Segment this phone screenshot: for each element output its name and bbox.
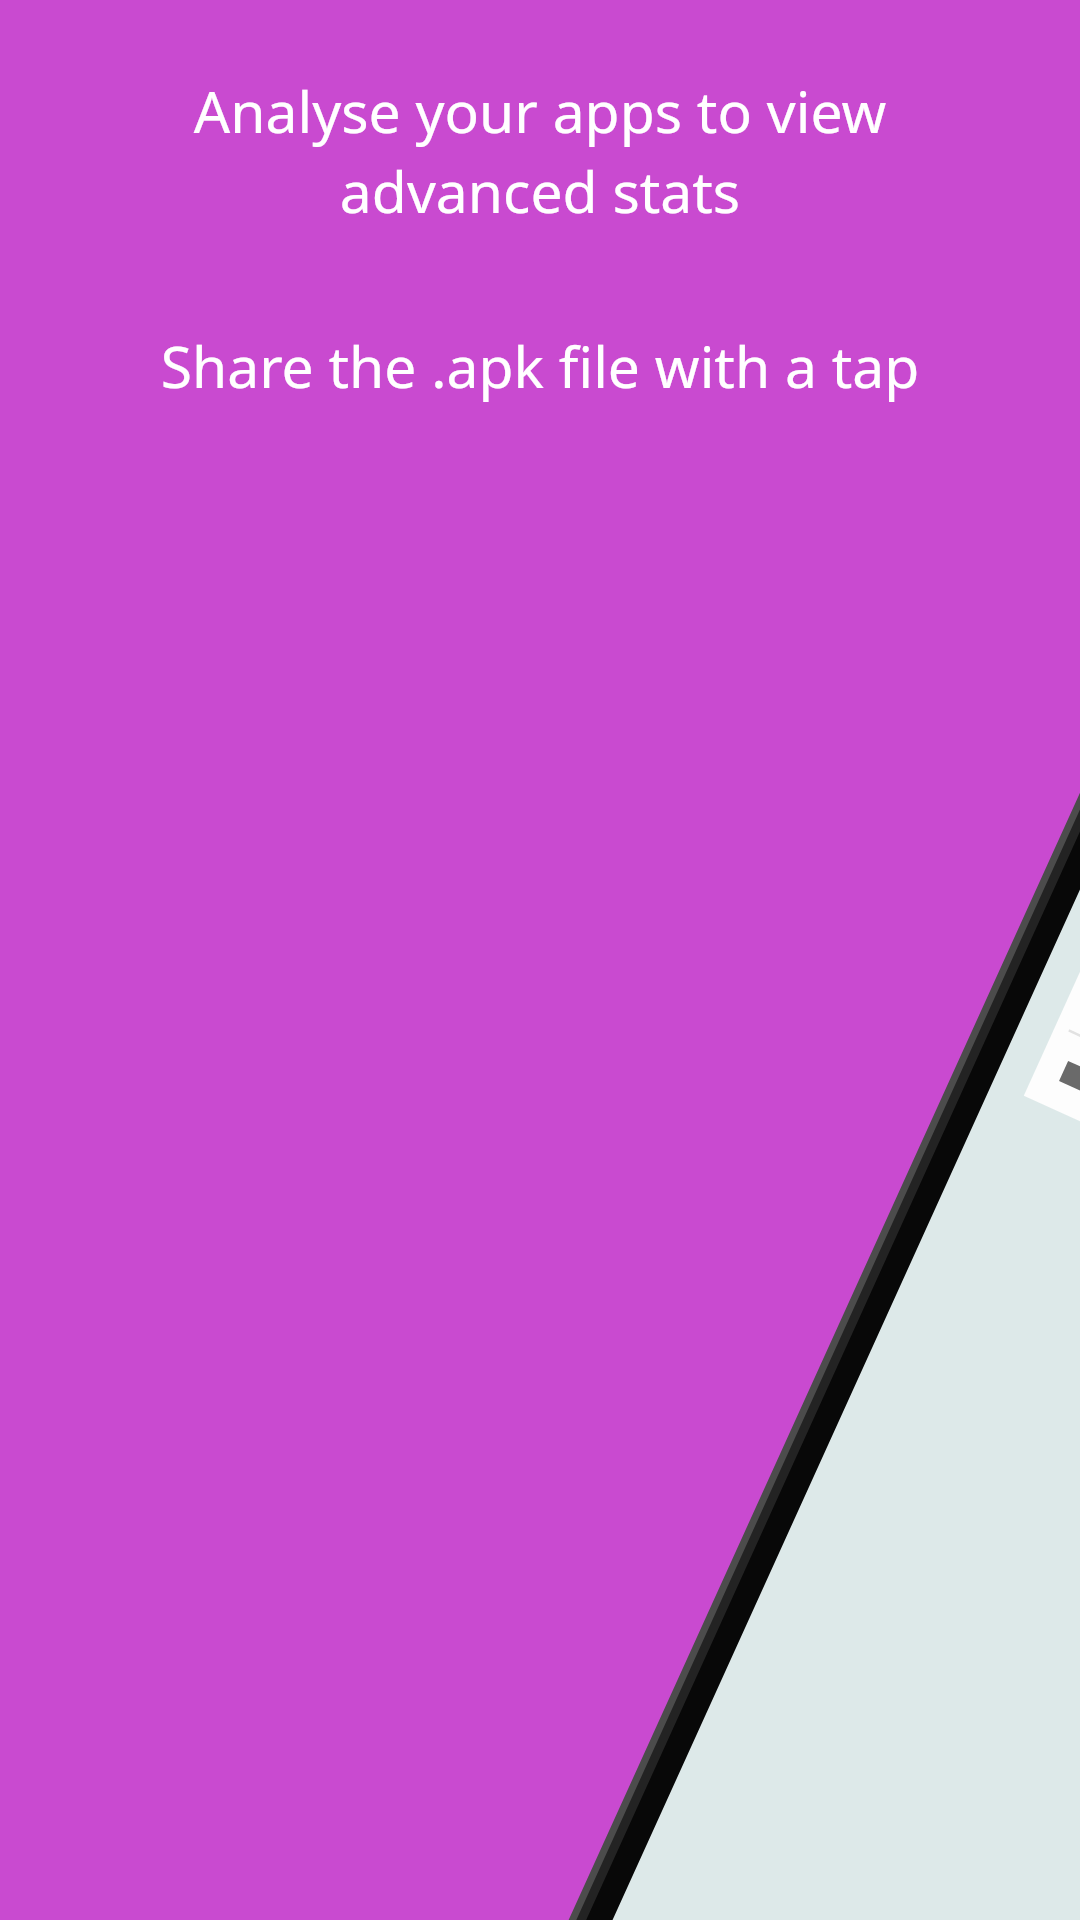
staticText: Share the .apk file with a tap [20, 327, 1060, 405]
staticText: Analyse your apps to view advanced stats [36, 72, 1044, 229]
